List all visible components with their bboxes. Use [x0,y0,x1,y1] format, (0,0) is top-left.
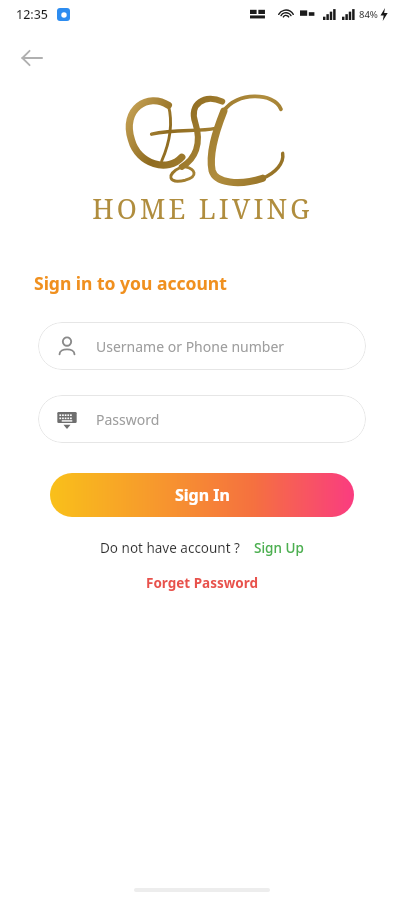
staticText: Do not have account ? [100,539,240,557]
button[interactable]: Sign Up [254,539,304,557]
button[interactable]: Sign In [50,473,354,517]
button[interactable]: Password [38,395,366,443]
button[interactable]: Username or Phone number [38,322,366,370]
staticText: 12:35 [16,6,49,23]
button[interactable]: Back [8,34,56,82]
staticText: Sign In [175,484,230,506]
staticText: Username or Phone number [96,337,285,356]
button[interactable]: Forget Password [146,574,259,592]
staticText: 84% [359,8,378,21]
staticText: Sign in to you account [34,271,227,295]
staticText: Password [96,410,160,429]
staticText: HOME LIVING [92,190,313,227]
staticText: Forget Password [146,574,259,592]
staticText: Sign Up [254,539,304,557]
